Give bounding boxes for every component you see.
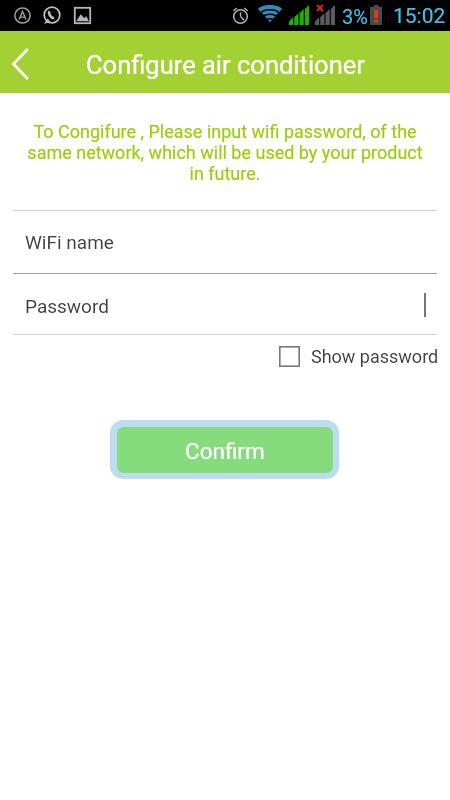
staticText: 15:02 bbox=[393, 4, 446, 29]
staticText: Configure air conditioner bbox=[86, 50, 365, 80]
staticText: To Congifure , Please input wifi passwor… bbox=[20, 121, 430, 184]
staticText: WiFi name bbox=[25, 231, 114, 253]
button[interactable]: Confirm bbox=[110, 420, 339, 479]
staticText: Show password bbox=[311, 346, 439, 367]
button[interactable]: Password bbox=[0, 276, 450, 336]
button[interactable]: Show password bbox=[279, 340, 439, 373]
button[interactable]: WiFi name bbox=[0, 211, 450, 273]
button[interactable]: Back bbox=[0, 35, 44, 89]
staticText: Password bbox=[25, 295, 109, 317]
staticText: Confirm bbox=[185, 438, 265, 464]
staticText: 3% bbox=[342, 5, 368, 28]
